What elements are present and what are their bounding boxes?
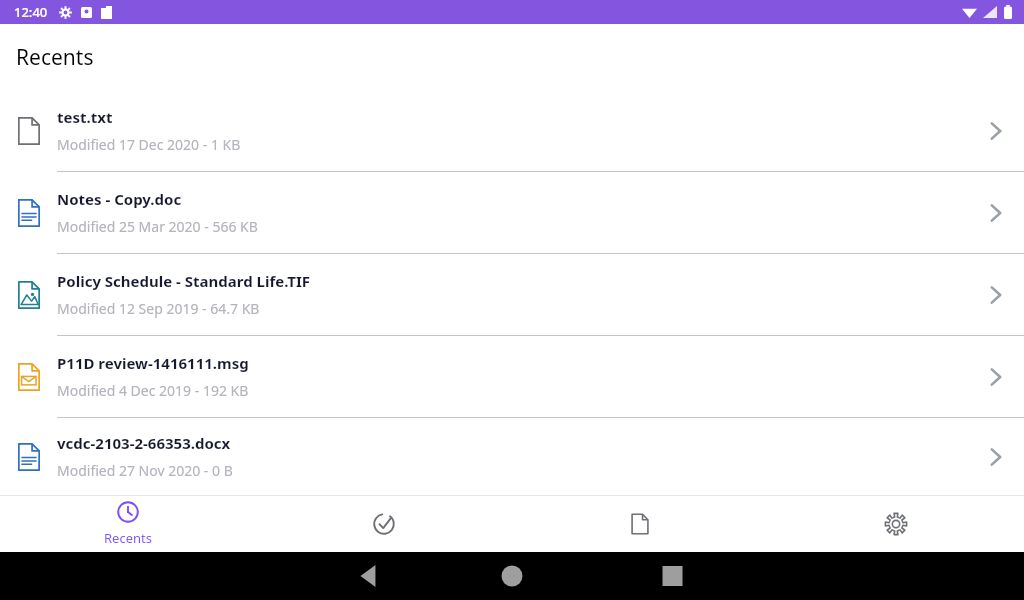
- staticText: test.txt: [57, 107, 113, 127]
- button[interactable]: Tasks: [256, 496, 512, 552]
- button[interactable]: Files: [512, 496, 768, 552]
- staticText: Recents: [16, 43, 94, 72]
- button[interactable]: vcdc-2103-2-66353.docx: [0, 418, 1024, 495]
- staticText: Recents: [104, 529, 152, 547]
- staticText: vcdc-2103-2-66353.docx: [57, 433, 231, 453]
- other: Open: [968, 172, 1024, 253]
- staticText: P11D review-1416111.msg: [57, 353, 249, 373]
- other: Open: [968, 418, 1024, 495]
- button[interactable]: Recents: [0, 496, 256, 552]
- staticText: 12:40: [14, 3, 48, 21]
- staticText: Policy Schedule - Standard Life.TIF: [57, 271, 311, 291]
- staticText: Notes - Copy.doc: [57, 189, 182, 209]
- staticText: Modified 12 Sep 2019 - 64.7 KB: [57, 299, 260, 318]
- button[interactable]: P11D review-1416111.msg: [0, 336, 1024, 418]
- staticText: Modified 27 Nov 2020 - 0 B: [57, 461, 233, 480]
- button[interactable]: Settings: [768, 496, 1024, 552]
- other: Open: [968, 336, 1024, 417]
- staticText: Modified 25 Mar 2020 - 566 KB: [57, 217, 258, 236]
- other: Open: [968, 90, 1024, 171]
- staticText: Modified 17 Dec 2020 - 1 KB: [57, 135, 241, 154]
- button[interactable]: test.txt: [0, 90, 1024, 172]
- button[interactable]: Notes - Copy.doc: [0, 172, 1024, 254]
- button[interactable]: Policy Schedule - Standard Life.TIF: [0, 254, 1024, 336]
- staticText: Modified 4 Dec 2019 - 192 KB: [57, 381, 249, 400]
- other: Open: [968, 254, 1024, 335]
